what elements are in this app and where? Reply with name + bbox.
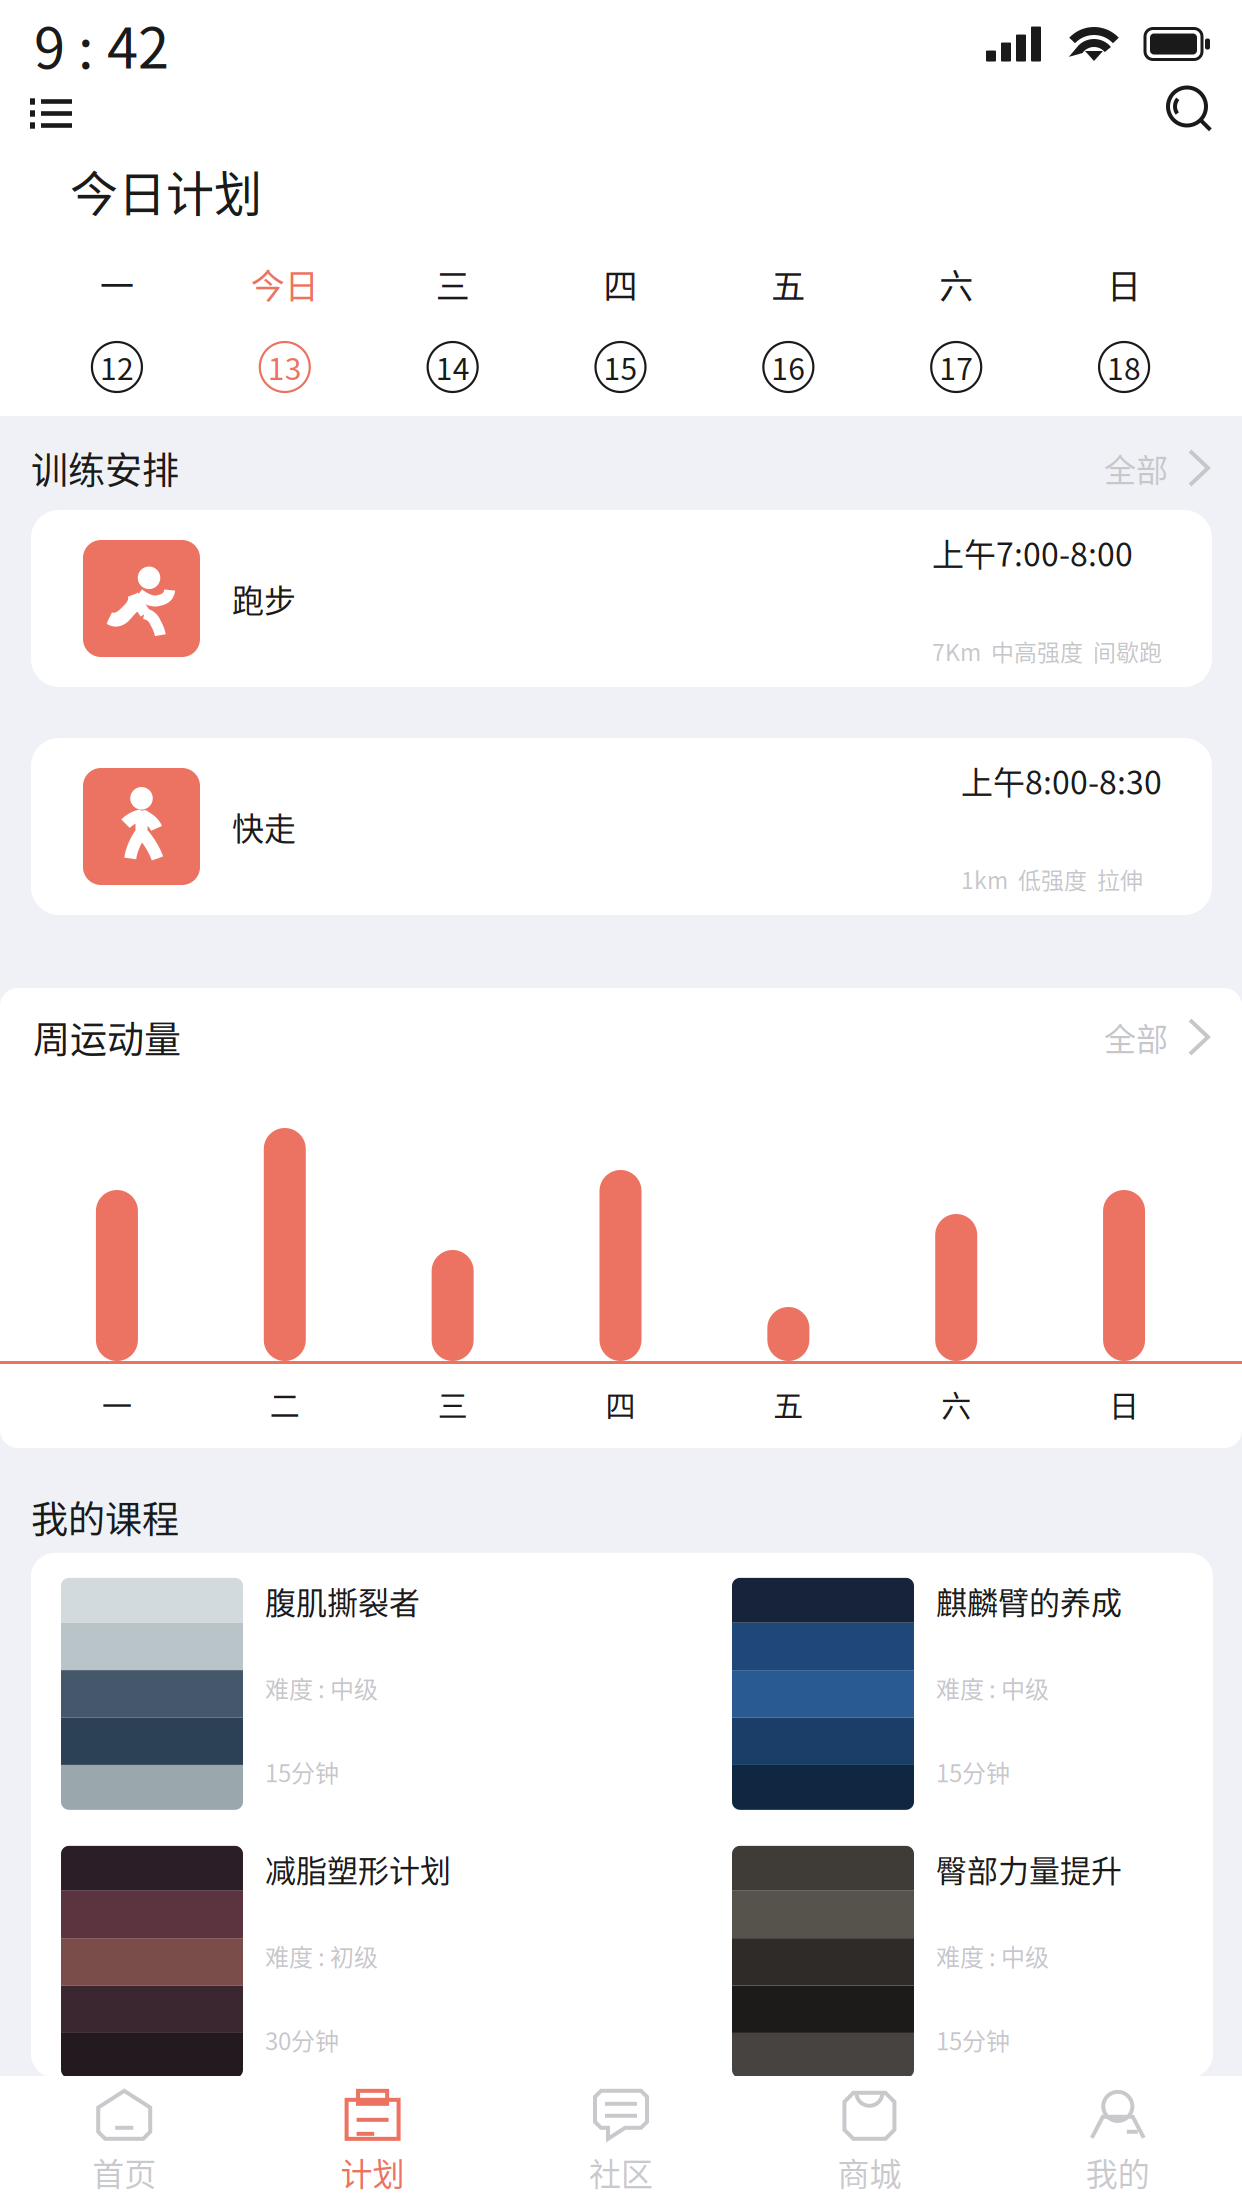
staticText: 减脂塑形计划 — [265, 1846, 451, 1891]
button[interactable]: 四 — [537, 242, 704, 392]
staticText: 17 — [939, 345, 973, 389]
staticText: 15分钟 — [936, 1754, 1010, 1789]
staticText: 15分钟 — [265, 1754, 339, 1789]
staticText: 一 — [102, 1382, 132, 1425]
staticText: 9 : 42 — [34, 3, 169, 85]
button[interactable]: 一 — [33, 242, 201, 392]
staticText: 臀部力量提升 — [936, 1846, 1122, 1891]
staticText: 12 — [100, 345, 134, 389]
button[interactable]: 快走 — [31, 738, 1212, 915]
button[interactable]: 首页 — [0, 2076, 248, 2208]
staticText: 腹肌撕裂者 — [265, 1578, 420, 1623]
staticText: 上午8:00-8:30 — [961, 757, 1162, 804]
staticText: 计划 — [341, 2149, 405, 2195]
staticText: 四 — [603, 259, 637, 309]
button[interactable]: 臀部力量提升 — [732, 1846, 1182, 2078]
button[interactable]: 全部 — [1104, 1014, 1212, 1060]
staticText: 今日 — [251, 259, 319, 309]
staticText: 7Km 中高强度 间歇跑 — [932, 634, 1162, 667]
staticText: 商城 — [837, 2149, 901, 2195]
staticText: 社区 — [589, 2149, 653, 2195]
staticText: 跑步 — [232, 575, 296, 622]
staticText: 13 — [268, 345, 302, 389]
staticText: 快走 — [232, 803, 296, 850]
button[interactable]: 六 — [872, 242, 1040, 392]
staticText: 18 — [1107, 345, 1141, 389]
staticText: 难度 : 中级 — [936, 1670, 1049, 1705]
button[interactable]: Search — [1144, 71, 1242, 155]
staticText: 麒麟臂的养成 — [936, 1578, 1122, 1623]
button[interactable]: 全部 — [1104, 445, 1212, 491]
staticText: 15 — [603, 345, 637, 389]
staticText: 1km 低强度 拉伸 — [961, 862, 1143, 895]
staticText: 三 — [438, 1382, 468, 1425]
staticText: 六 — [939, 259, 973, 309]
staticText: 14 — [436, 345, 470, 389]
staticText: 16 — [771, 345, 805, 389]
button[interactable]: 商城 — [745, 2076, 994, 2208]
staticText: 我的 — [1086, 2149, 1150, 2195]
staticText: 日 — [1107, 259, 1141, 309]
staticText: 今日计划 — [70, 156, 262, 225]
staticText: 难度 : 初级 — [265, 1938, 378, 1973]
button[interactable]: 我的 — [994, 2076, 1242, 2208]
staticText: 我的课程 — [31, 1490, 179, 1544]
staticText: 四 — [605, 1382, 635, 1425]
button[interactable]: 麒麟臂的养成 — [732, 1578, 1182, 1810]
staticText: 首页 — [92, 2149, 156, 2195]
staticText: 难度 : 中级 — [936, 1938, 1049, 1973]
staticText: 全部 — [1104, 445, 1168, 491]
staticText: 六 — [941, 1382, 971, 1425]
button[interactable]: 日 — [1040, 242, 1208, 392]
staticText: 15分钟 — [936, 2022, 1010, 2057]
staticText: 上午7:00-8:00 — [932, 529, 1133, 576]
button[interactable]: 社区 — [497, 2076, 745, 2208]
staticText: 二 — [270, 1382, 300, 1425]
button[interactable]: 减脂塑形计划 — [61, 1846, 732, 2078]
button[interactable]: 三 — [369, 242, 537, 392]
staticText: 全部 — [1104, 1014, 1168, 1060]
staticText: 五 — [773, 1382, 803, 1425]
staticText: 一 — [100, 259, 134, 309]
button[interactable]: Menu — [0, 83, 102, 143]
button[interactable]: 跑步 — [31, 510, 1212, 687]
staticText: 30分钟 — [265, 2022, 339, 2057]
staticText: 难度 : 中级 — [265, 1670, 378, 1705]
staticText: 五 — [771, 259, 805, 309]
staticText: 周运动量 — [33, 1010, 181, 1064]
button[interactable]: 今日 — [201, 242, 369, 392]
button[interactable]: 计划 — [248, 2076, 497, 2208]
button[interactable]: 五 — [704, 242, 872, 392]
staticText: 训练安排 — [31, 441, 179, 495]
staticText: 日 — [1109, 1382, 1139, 1425]
button[interactable]: 腹肌撕裂者 — [61, 1578, 732, 1810]
staticText: 三 — [436, 259, 470, 309]
